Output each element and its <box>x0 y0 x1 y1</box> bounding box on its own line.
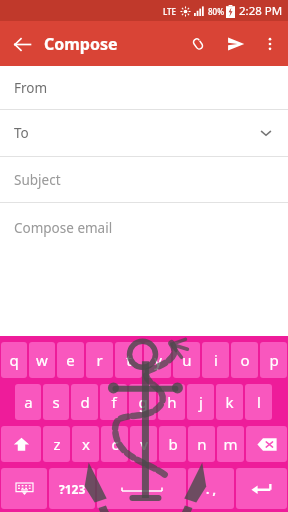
button[interactable]: h <box>158 384 185 420</box>
button[interactable]: From <box>0 66 288 109</box>
staticText: r <box>96 350 103 370</box>
button[interactable]: d <box>71 384 98 420</box>
staticText: x <box>82 434 90 454</box>
staticText: o <box>240 350 250 370</box>
button[interactable]: Compose email <box>0 203 288 253</box>
button[interactable]: ?123 <box>49 468 95 509</box>
staticText: l <box>257 392 261 412</box>
button[interactable]: j <box>187 384 214 420</box>
button[interactable]: Space <box>97 468 186 509</box>
button[interactable]: Back <box>0 22 44 66</box>
button[interactable]: Enter <box>236 468 287 509</box>
staticText: ?123 <box>59 481 86 497</box>
staticText: g <box>138 392 148 412</box>
button[interactable]: t <box>115 342 142 378</box>
button[interactable]: i <box>202 342 229 378</box>
button[interactable]: f <box>100 384 127 420</box>
staticText: Subject <box>14 171 61 189</box>
staticText: 2:28 PM <box>239 3 283 19</box>
staticText: i <box>214 350 218 370</box>
button[interactable]: s <box>43 384 69 420</box>
button[interactable]: To <box>0 110 288 156</box>
button[interactable]: Subject <box>0 157 288 202</box>
button[interactable]: a <box>15 384 41 420</box>
staticText: d <box>80 392 90 412</box>
staticText: e <box>66 350 75 370</box>
staticText: s <box>52 392 60 412</box>
staticText: LTE <box>163 6 177 17</box>
staticText: t <box>126 350 132 370</box>
button[interactable]: w <box>29 342 55 378</box>
staticText: Compose email <box>14 219 113 237</box>
button[interactable]: l <box>245 384 272 420</box>
staticText: z <box>53 434 61 454</box>
staticText: p <box>269 350 279 370</box>
staticText: k <box>225 392 234 412</box>
staticText: m <box>223 434 238 454</box>
button[interactable]: More options <box>255 29 285 59</box>
button[interactable]: . , <box>188 468 234 509</box>
staticText: v <box>140 434 148 454</box>
button[interactable]: Shift <box>1 426 41 462</box>
staticText: f <box>111 392 117 412</box>
staticText: j <box>199 392 203 412</box>
button[interactable]: y <box>144 342 171 378</box>
button[interactable]: p <box>260 342 287 378</box>
staticText: a <box>24 392 33 412</box>
staticText: To <box>14 124 29 142</box>
button[interactable]: Switch keyboard <box>1 468 47 509</box>
staticText: w <box>36 350 48 370</box>
staticText: q <box>9 350 19 370</box>
button[interactable]: z <box>43 426 70 462</box>
button[interactable]: g <box>129 384 156 420</box>
button[interactable]: Backspace <box>246 426 287 462</box>
button[interactable]: b <box>159 426 186 462</box>
staticText: Compose <box>44 33 118 55</box>
button[interactable]: v <box>130 426 157 462</box>
button[interactable]: u <box>173 342 200 378</box>
button[interactable]: x <box>72 426 99 462</box>
staticText: y <box>154 350 162 370</box>
button[interactable]: q <box>1 342 27 378</box>
button[interactable]: c <box>101 426 128 462</box>
button[interactable]: m <box>217 426 244 462</box>
staticText: 80% <box>208 6 224 17</box>
button[interactable]: k <box>216 384 243 420</box>
button[interactable]: Attach <box>179 25 217 63</box>
staticText: n <box>197 434 207 454</box>
button[interactable]: r <box>86 342 113 378</box>
staticText: u <box>182 350 192 370</box>
staticText: From <box>14 79 48 97</box>
staticText: h <box>167 392 177 412</box>
staticText: b <box>168 434 178 454</box>
button[interactable]: e <box>57 342 84 378</box>
button[interactable]: Send <box>217 25 255 63</box>
button[interactable]: n <box>188 426 215 462</box>
staticText: . , <box>206 481 216 497</box>
staticText: c <box>111 434 119 454</box>
button[interactable]: o <box>231 342 258 378</box>
